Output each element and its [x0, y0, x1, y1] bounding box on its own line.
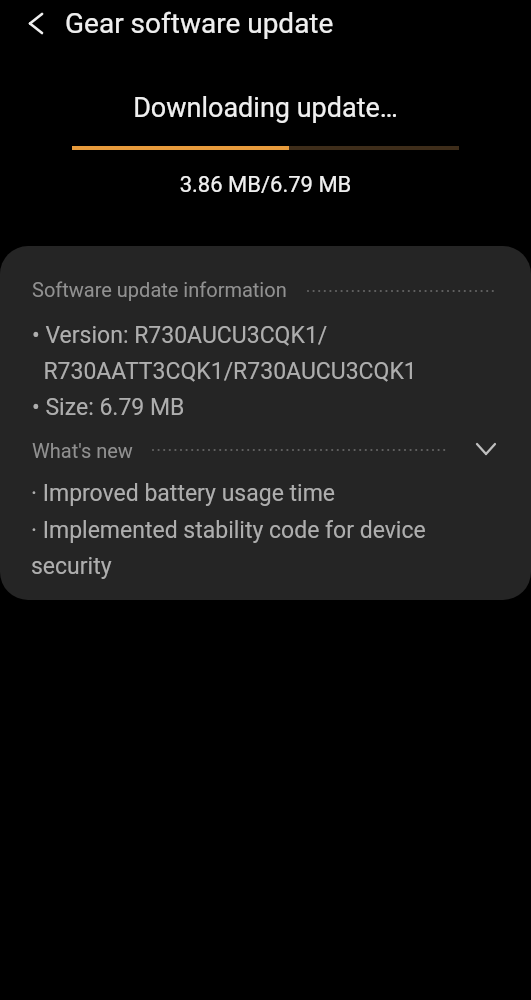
staticText: · Improved battery usage time · Implemen… [31, 480, 435, 580]
staticText: • Version: R730AUCU3CQK1/ R730AATT3CQK1/… [32, 322, 417, 421]
button[interactable]: Gear software update [60, 0, 350, 48]
staticText: Software update information [32, 278, 287, 301]
button[interactable]: Software update information [24, 274, 507, 304]
button[interactable]: What's new, expand [24, 433, 507, 467]
staticText: What's new [32, 439, 133, 462]
button[interactable]: Navigate up [14, 4, 58, 42]
staticText: Gear software update [65, 7, 334, 40]
staticText: Downloading update… [0, 92, 531, 124]
staticText: 3.86 MB/6.79 MB [0, 172, 531, 198]
